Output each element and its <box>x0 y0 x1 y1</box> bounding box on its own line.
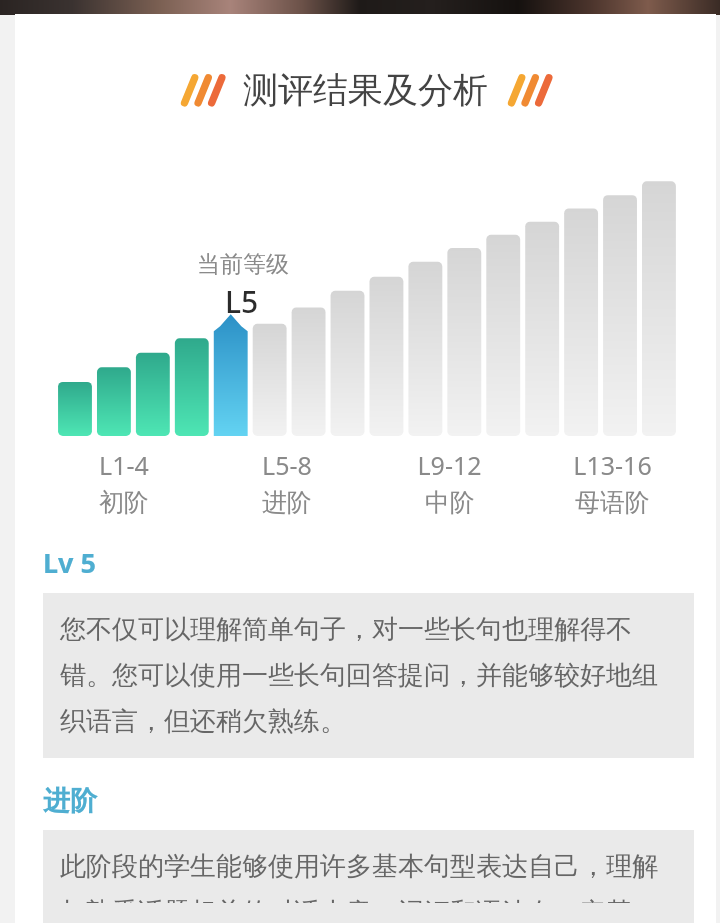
button[interactable]: 您不仅可以理解简单句子，对一些长句也理解得不错。您可以使用一些长句回答提问，并能… <box>43 593 694 758</box>
staticText: L1-4 <box>99 448 149 482</box>
staticText: L9-12 <box>417 448 482 482</box>
button[interactable]: decorative stripes <box>15 68 716 112</box>
staticText: 初阶 <box>99 487 149 518</box>
staticText: 进阶 <box>262 487 312 518</box>
button[interactable]: L9-12 <box>368 448 531 518</box>
staticText: L5-8 <box>262 448 312 482</box>
button[interactable]: L1-4 <box>43 448 205 518</box>
button[interactable]: 此阶段的学生能够使用许多基本句型表达自己，理解与熟悉话题相关的对话大意，词汇和语… <box>43 830 694 923</box>
staticText: 您不仅可以理解简单句子，对一些长句也理解得不错。您可以使用一些长句回答提问，并能… <box>60 613 677 738</box>
other: decorative stripes <box>179 73 225 107</box>
button[interactable]: L13-16 <box>531 448 694 518</box>
staticText: L13-16 <box>573 448 652 482</box>
button[interactable]: Lv 5 <box>43 544 96 581</box>
staticText: 当前等级 <box>197 250 289 279</box>
staticText: 测评结果及分析 <box>243 68 488 112</box>
staticText: 此阶段的学生能够使用许多基本句型表达自己，理解与熟悉话题相关的对话大意，词汇和语… <box>60 850 677 903</box>
button[interactable]: L5-8 <box>205 448 368 518</box>
other: decorative stripes <box>506 73 552 107</box>
staticText: 中阶 <box>425 487 475 518</box>
staticText: 母语阶 <box>575 487 650 518</box>
staticText: L5 <box>225 281 259 322</box>
button[interactable]: 进阶 <box>43 784 97 818</box>
